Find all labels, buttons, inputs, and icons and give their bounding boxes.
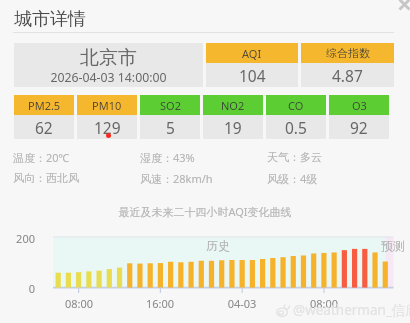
staticText: 最近及未来二十四小时AQI变化曲线 <box>0 204 410 219</box>
staticText: PM2.5 <box>28 98 61 113</box>
staticText: 2026-04-03 14:00:00 <box>14 69 203 86</box>
button[interactable]: PM2.5 <box>14 95 74 139</box>
staticText: 综合指数 <box>326 46 370 60</box>
button[interactable]: AQI <box>206 43 298 87</box>
button[interactable]: CO <box>266 95 326 139</box>
staticText: 08:00 <box>54 296 104 311</box>
button[interactable]: 北京市 <box>14 43 203 87</box>
staticText: 16:00 <box>135 296 185 311</box>
staticText: 5 <box>166 117 175 138</box>
staticText: 104 <box>239 65 266 86</box>
staticText: 0.5 <box>285 117 307 138</box>
staticText: 风速：28km/h <box>140 171 267 186</box>
staticText: 200 <box>0 231 35 246</box>
staticText: 129 <box>94 117 121 138</box>
staticText: 19 <box>224 117 242 138</box>
button[interactable]: 综合指数 <box>301 43 394 87</box>
staticText: 92 <box>350 117 368 138</box>
staticText: 08:00 <box>299 296 349 311</box>
staticText: AQI <box>242 46 262 61</box>
staticText: 历史 <box>206 238 230 253</box>
button[interactable]: O3 <box>329 95 389 139</box>
staticText: CO <box>288 98 304 113</box>
staticText: O3 <box>352 98 367 113</box>
staticText: NO2 <box>221 98 245 113</box>
staticText: 天气：多云 <box>267 150 394 164</box>
button[interactable]: PM10 <box>77 95 137 139</box>
staticText: 62 <box>35 117 53 138</box>
staticText: 温度：20℃ <box>13 150 140 165</box>
button[interactable]: SO2 <box>140 95 200 139</box>
staticText: PM10 <box>92 98 122 113</box>
staticText: 城市详情 <box>14 8 86 31</box>
staticText: 4.87 <box>332 65 363 86</box>
staticText: 北京市 <box>14 46 203 70</box>
staticText: 04-03 <box>217 296 267 311</box>
button[interactable]: NO2 <box>203 95 263 139</box>
staticText: SO2 <box>160 98 181 113</box>
staticText: 湿度：43% <box>140 150 267 165</box>
staticText: 风级：4级 <box>267 171 394 186</box>
staticText: 风向：西北风 <box>13 171 140 185</box>
staticText: @weatherman_信欣 <box>293 301 410 319</box>
button[interactable]: Close <box>395 0 410 14</box>
staticText: 0 <box>0 281 35 296</box>
staticText: 预测 <box>381 238 405 253</box>
